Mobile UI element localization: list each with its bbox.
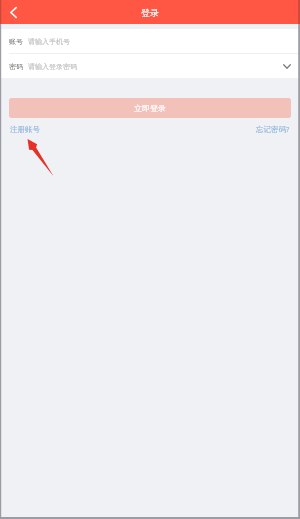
staticText: 密码 <box>9 62 23 71</box>
button[interactable]: Back <box>0 0 24 24</box>
button[interactable]: 注册账号 <box>10 123 40 135</box>
staticText: 请输入手机号 <box>28 37 70 46</box>
button[interactable]: 立即登录 <box>9 98 291 118</box>
staticText: 注册账号 <box>10 125 40 134</box>
staticText: 账号 <box>9 37 23 46</box>
staticText: 忘记密码? <box>256 124 290 134</box>
staticText: 立即登录 <box>134 103 166 113</box>
staticText: 请输入登录密码 <box>28 62 77 71</box>
button[interactable]: 密码 <box>0 54 300 78</box>
button[interactable]: 忘记密码? <box>256 123 290 135</box>
button[interactable]: 账号 <box>0 29 300 53</box>
staticText: 登录 <box>141 7 159 18</box>
